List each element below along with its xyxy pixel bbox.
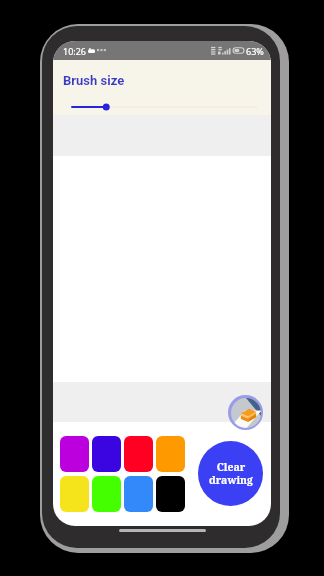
button[interactable]: [156, 476, 185, 512]
button[interactable]: Clear drawing: [198, 441, 263, 506]
button[interactable]: [156, 436, 185, 472]
staticText: 10:26: [63, 45, 87, 57]
button[interactable]: [92, 436, 121, 472]
button[interactable]: [60, 476, 89, 512]
staticText: Brush size: [63, 73, 125, 88]
button[interactable]: [53, 100, 271, 114]
button[interactable]: Eraser: [228, 395, 263, 430]
staticText: 63%: [246, 45, 264, 57]
button[interactable]: [124, 476, 153, 512]
button[interactable]: [124, 436, 153, 472]
button[interactable]: [60, 436, 89, 472]
button[interactable]: [92, 476, 121, 512]
staticText: Clear drawing: [209, 460, 253, 487]
